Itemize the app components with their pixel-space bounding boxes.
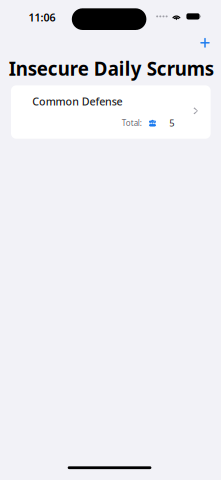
- staticText: Total:: [122, 118, 142, 128]
- staticText: 5: [169, 117, 174, 129]
- button[interactable]: New scrum: [192, 31, 218, 55]
- staticText: 11:06: [29, 10, 56, 24]
- staticText: Insecure Daily Scrums: [9, 56, 214, 81]
- staticText: Common Defense: [32, 94, 123, 109]
- button[interactable]: Common Defense: [11, 85, 211, 139]
